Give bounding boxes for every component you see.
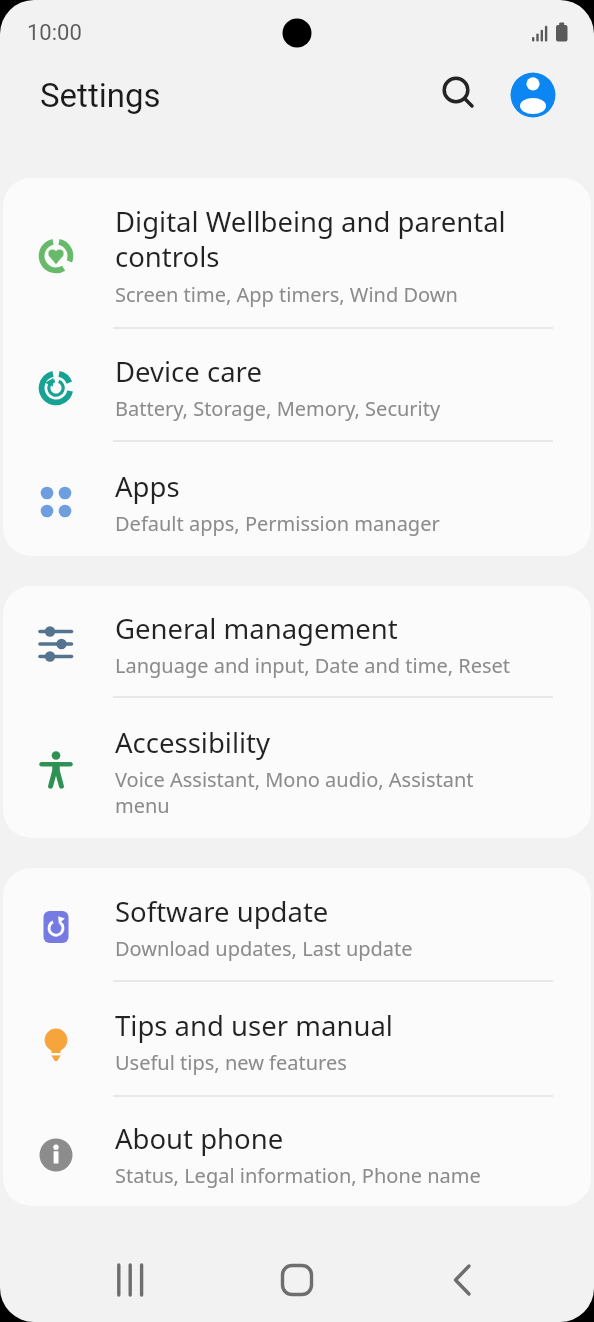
button[interactable]: Tips and user manual — [3, 982, 591, 1095]
staticText: Digital Wellbeing and parental controls — [115, 203, 506, 276]
staticText: Useful tips, new features — [115, 1049, 347, 1076]
button[interactable]: Accessibility — [3, 698, 591, 838]
button[interactable] — [422, 1240, 502, 1320]
staticText: Screen time, App timers, Wind Down — [115, 281, 458, 308]
button[interactable]: Apps — [3, 442, 591, 556]
staticText: Voice Assistant, Mono audio, Assistant m… — [115, 766, 474, 819]
staticText: About phone — [115, 1120, 284, 1157]
staticText: Device care — [115, 353, 262, 390]
staticText: Apps — [115, 468, 180, 505]
staticText: Language and input, Date and time, Reset — [115, 652, 511, 679]
staticText: Download updates, Last update — [115, 935, 413, 962]
staticText: Status, Legal information, Phone name — [115, 1162, 481, 1189]
button[interactable] — [438, 73, 478, 113]
staticText: Battery, Storage, Memory, Security — [115, 395, 441, 422]
button[interactable] — [257, 1240, 337, 1320]
staticText: Settings — [40, 76, 161, 115]
button[interactable]: Software update — [3, 868, 591, 980]
button[interactable] — [90, 1240, 170, 1320]
staticText: General management — [115, 610, 398, 647]
staticText: 10:00 — [27, 20, 82, 46]
button[interactable]: General management — [3, 586, 591, 696]
staticText: Software update — [115, 893, 329, 930]
staticText: Accessibility — [115, 724, 271, 761]
staticText: Tips and user manual — [115, 1007, 393, 1044]
button[interactable]: About phone — [3, 1097, 591, 1206]
button[interactable] — [510, 72, 556, 118]
button[interactable]: Digital Wellbeing and parental controls — [3, 178, 591, 327]
staticText: Default apps, Permission manager — [115, 510, 440, 537]
button[interactable]: Device care — [3, 329, 591, 440]
